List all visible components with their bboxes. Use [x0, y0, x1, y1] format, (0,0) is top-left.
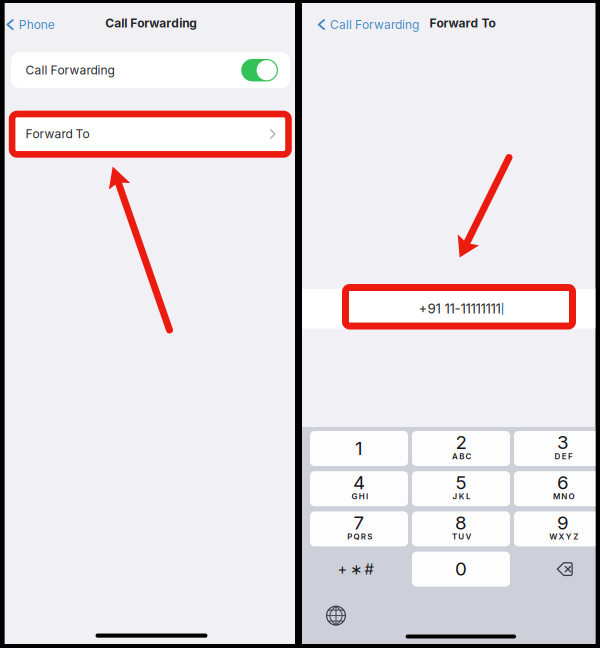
button[interactable]: Call Forwarding toggle [241, 59, 278, 81]
staticText: MNO [553, 492, 574, 501]
button[interactable]: 5 [412, 471, 510, 506]
button[interactable]: 3 [514, 431, 600, 466]
staticText: 5 [455, 471, 466, 493]
staticText: JKL [452, 492, 471, 501]
button[interactable]: Phone [3, 11, 58, 38]
button[interactable]: +∗# [306, 552, 404, 587]
button[interactable]: Forward To [11, 115, 290, 153]
button[interactable]: 8 [412, 511, 510, 546]
button[interactable]: Call Forwarding [315, 11, 422, 38]
staticText: 3 [557, 431, 569, 453]
staticText: 4 [353, 471, 365, 493]
button[interactable]: 6 [514, 471, 600, 506]
staticText: PQRS [347, 532, 372, 541]
staticText: Phone [19, 17, 55, 32]
staticText: WXYZ [549, 532, 578, 541]
button[interactable]: 2 [412, 431, 510, 466]
staticText: GHI [351, 492, 368, 501]
button[interactable]: 0 [412, 552, 510, 587]
staticText: ABC [452, 451, 471, 461]
button[interactable]: 9 [514, 511, 600, 546]
staticText: +∗# [337, 560, 374, 578]
staticText: 6 [557, 471, 569, 493]
button[interactable]: Delete [515, 552, 600, 587]
staticText: 1 [355, 437, 363, 459]
staticText: TUV [452, 532, 471, 541]
button[interactable]: 4 [310, 471, 408, 506]
button[interactable]: Next keyboard [319, 601, 353, 631]
staticText: 0 [455, 558, 467, 580]
staticText: Forward To [429, 16, 495, 30]
button[interactable]: 7 [310, 511, 408, 546]
button[interactable]: 1 [310, 431, 408, 466]
staticText: Forward To [25, 127, 89, 141]
staticText: 8 [455, 512, 467, 534]
staticText: Call Forwarding [330, 17, 419, 32]
staticText: Call Forwarding [25, 63, 114, 77]
staticText: +91 11-11111111 [418, 301, 500, 317]
staticText: 9 [557, 512, 569, 534]
staticText: Call Forwarding [105, 16, 197, 30]
staticText: 2 [455, 431, 466, 453]
staticText: 7 [353, 512, 364, 534]
staticText: DEF [554, 451, 573, 461]
